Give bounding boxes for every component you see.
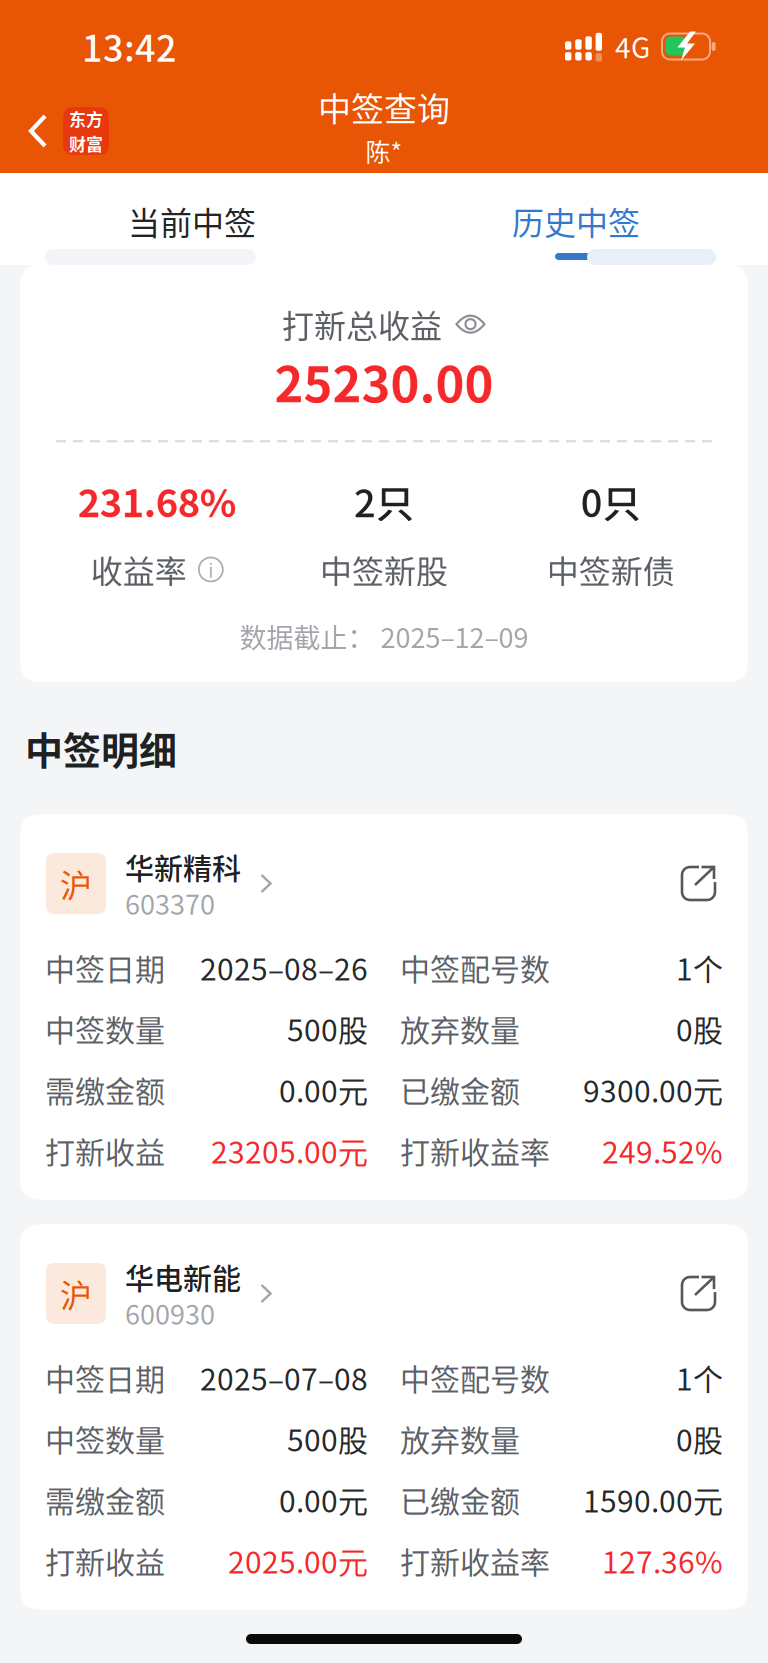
staticText: 231.68% [78,473,237,528]
staticText: 0股 [676,1417,723,1460]
staticText: 中签查询 [318,83,450,131]
staticText: 打新收益率 [400,1539,550,1582]
staticText: 放弃数量 [400,1417,520,1460]
staticText: 603370 [125,883,215,922]
staticText: 需缴金额 [45,1478,165,1521]
staticText: 600930 [125,1293,215,1332]
staticText: 收益率 [91,546,187,593]
staticText: 打新总收益 [282,301,442,347]
button[interactable]: 打开详情 [664,830,748,937]
staticText: 沪 [60,1270,92,1317]
staticText: 2025–08–26 [200,946,368,989]
button[interactable]: 沪 [20,830,273,937]
staticText: 当前中签 [128,198,256,244]
staticText: 中签明细 [25,720,177,775]
staticText: 0.00元 [279,1068,368,1111]
staticText: 中签配号数 [400,1356,550,1399]
button[interactable]: 历史中签 [384,173,768,265]
staticText: 中签新股 [320,546,448,593]
staticText: 249.52% [602,1129,723,1172]
button[interactable]: 打开详情 [664,1240,748,1347]
staticText: 25230.00 [274,345,493,416]
staticText: 沪 [60,860,92,907]
staticText: 打新收益 [45,1129,165,1172]
button[interactable]: 沪 [20,1240,273,1347]
staticText: i [208,556,213,583]
staticText: 1590.00元 [583,1478,723,1521]
staticText: 1个 [676,1356,723,1399]
staticText: 2只 [354,473,414,528]
staticText: 中签配号数 [400,946,550,989]
staticText: 财富 [69,131,103,156]
staticText: 已缴金额 [400,1068,520,1111]
staticText: 500股 [287,1007,368,1050]
staticText: 中签日期 [45,1356,165,1399]
staticText: 数据截止： 2025–12–09 [239,617,528,656]
staticText: 0.00元 [279,1478,368,1521]
staticText: 中签数量 [45,1417,165,1460]
staticText: 127.36% [602,1539,723,1582]
staticText: 中签日期 [45,946,165,989]
staticText: 需缴金额 [45,1068,165,1111]
staticText: 0股 [676,1007,723,1050]
staticText: 打新收益率 [400,1129,550,1172]
staticText: 4G [615,26,650,66]
button[interactable]: 东方 [0,95,125,167]
staticText: 打新收益 [45,1539,165,1582]
staticText: 0只 [581,473,641,528]
staticText: 9300.00元 [583,1068,723,1111]
staticText: 23205.00元 [211,1129,368,1172]
staticText: 已缴金额 [400,1478,520,1521]
staticText: 1个 [676,946,723,989]
staticText: 放弃数量 [400,1007,520,1050]
staticText: 2025–07–08 [200,1356,368,1399]
staticText: 中签数量 [45,1007,165,1050]
staticText: 中签新债 [547,546,675,593]
staticText: 东方 [69,106,103,131]
staticText: 13:42 [82,20,177,72]
staticText: 历史中签 [512,198,640,244]
staticText: 华新精科 [125,846,241,888]
staticText: 华电新能 [125,1256,241,1298]
staticText: 陈* [365,133,402,169]
staticText: 500股 [287,1417,368,1460]
staticText: 2025.00元 [228,1539,368,1582]
button[interactable]: 当前中签 [0,173,384,265]
